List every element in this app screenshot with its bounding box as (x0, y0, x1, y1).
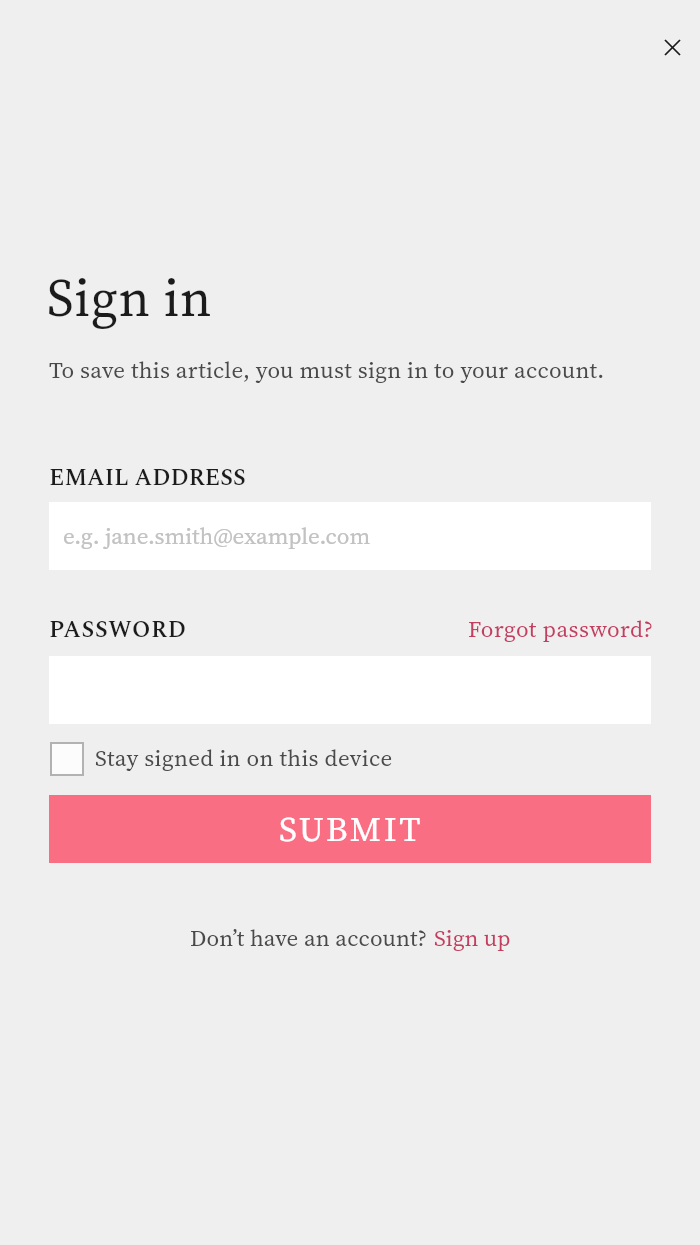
staticText: Stay signed in on this device (95, 742, 393, 774)
staticText: Forgot password? (468, 613, 654, 645)
staticText: Sign in (47, 262, 213, 333)
button[interactable] (49, 741, 393, 776)
staticText: PASSWORD (49, 613, 187, 648)
button[interactable]: e.g. jane.smith@example.com (49, 502, 651, 570)
button[interactable]: Forgot password? (468, 613, 654, 645)
button[interactable]: SUBMIT (49, 795, 651, 863)
staticText: Sign up (434, 922, 511, 954)
staticText: To save this article, you must sign in t… (49, 354, 605, 386)
staticText: SUBMIT (279, 805, 423, 853)
button[interactable]: Close (648, 23, 696, 71)
staticText: EMAIL ADDRESS (49, 461, 246, 496)
staticText: e.g. jane.smith@example.com (63, 520, 371, 552)
staticText: Don’t have an account? (190, 922, 428, 954)
button[interactable]: Sign up (434, 922, 511, 954)
